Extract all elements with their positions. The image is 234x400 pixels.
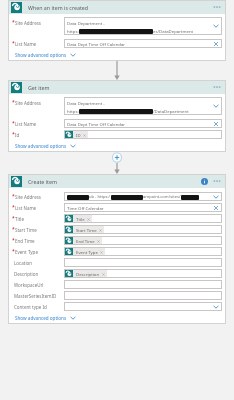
staticText: MasterSeriesItemID [14, 293, 57, 299]
staticText: Id [15, 132, 20, 138]
staticText: Data Dept Time Off Calendar [67, 41, 126, 47]
staticText: Get item [28, 84, 50, 91]
staticText: List Name [15, 121, 37, 127]
button[interactable]: Create item [8, 174, 226, 188]
staticText: * [12, 120, 15, 127]
button[interactable]: Event Type [64, 247, 222, 256]
button[interactable]: End Time [65, 237, 102, 245]
staticText: Location [14, 260, 33, 266]
button[interactable]: More options [211, 175, 223, 187]
staticText: WorkspaceUrl [14, 282, 44, 288]
staticText: * [12, 215, 15, 222]
button[interactable]: Data Department - [64, 97, 222, 115]
button[interactable] [64, 302, 222, 311]
staticText: Site Address [15, 100, 41, 106]
button[interactable]: Get item [8, 80, 226, 94]
button[interactable]: Event Type [65, 248, 105, 256]
staticText: * [12, 226, 15, 233]
staticText: Title [76, 216, 85, 222]
staticText: Show advanced options [15, 143, 67, 149]
button[interactable]: Title [65, 215, 92, 223]
button[interactable]: Start Time [64, 225, 222, 234]
staticText: * [12, 193, 15, 200]
button[interactable]: Show advanced options [15, 52, 76, 58]
button[interactable] [64, 280, 222, 289]
staticText: * [12, 237, 15, 244]
button[interactable]: Information [199, 176, 209, 186]
button[interactable]: ub - https:/ [64, 192, 222, 201]
staticText: Data Department - [67, 100, 105, 106]
staticText: es/DataDepartment [153, 28, 194, 34]
button[interactable]: Show advanced options [15, 315, 76, 321]
staticText: * [12, 204, 15, 211]
staticText: Show advanced options [15, 315, 67, 321]
button[interactable]: More options [211, 81, 223, 93]
staticText: Create item [28, 178, 57, 185]
staticText: ID [76, 132, 81, 138]
staticText: List Name [15, 41, 37, 47]
staticText: Event Type [15, 249, 38, 255]
staticText: Show advanced options [15, 52, 67, 58]
staticText: Title [15, 216, 24, 222]
staticText: Description [14, 271, 39, 277]
staticText: * [12, 19, 15, 26]
button[interactable]: More options [211, 1, 223, 13]
button[interactable] [64, 258, 222, 267]
staticText: End Time [76, 238, 95, 244]
staticText: https: [67, 108, 79, 114]
staticText: * [12, 40, 15, 47]
button[interactable]: Start Time [65, 226, 104, 234]
staticText: Content type Id [14, 304, 47, 310]
staticText: Data Department - [67, 20, 105, 26]
staticText: Time Off Calendar [67, 205, 104, 211]
staticText: List Name [15, 205, 37, 211]
staticText: ub - https:/ [89, 194, 111, 200]
staticText: arepoint.com/sites/ [143, 194, 181, 200]
button[interactable]: End Time [64, 236, 222, 245]
staticText: https: [67, 28, 79, 34]
button[interactable]: Title [64, 214, 222, 223]
button[interactable]: When an item is created [8, 0, 226, 14]
staticText: Site Address [15, 20, 41, 26]
staticText: Event Type [76, 249, 98, 255]
staticText: Description [76, 271, 100, 277]
button[interactable] [64, 291, 222, 300]
staticText: * [12, 99, 15, 106]
button[interactable]: Description [64, 269, 222, 278]
button[interactable]: Data Dept Time Off Calendar [64, 39, 222, 48]
staticText: /DataDepartment [153, 108, 189, 114]
staticText: Start Time [15, 227, 37, 233]
button[interactable]: Time Off Calendar [64, 203, 222, 212]
button[interactable]: Show advanced options [15, 143, 76, 149]
button[interactable]: Data Department - [64, 17, 222, 35]
staticText: Data Dept Time Off Calendar [67, 121, 126, 127]
staticText: When an item is created [28, 4, 89, 11]
button[interactable]: Description [65, 270, 107, 278]
button[interactable]: ID [65, 131, 88, 139]
button[interactable]: Data Dept Time Off Calendar [64, 119, 222, 128]
button[interactable]: ID [64, 130, 222, 139]
staticText: * [12, 248, 15, 255]
staticText: Start Time [76, 227, 97, 233]
staticText: End Time [15, 238, 35, 244]
staticText: Site Address [15, 194, 41, 200]
staticText: * [12, 131, 15, 138]
